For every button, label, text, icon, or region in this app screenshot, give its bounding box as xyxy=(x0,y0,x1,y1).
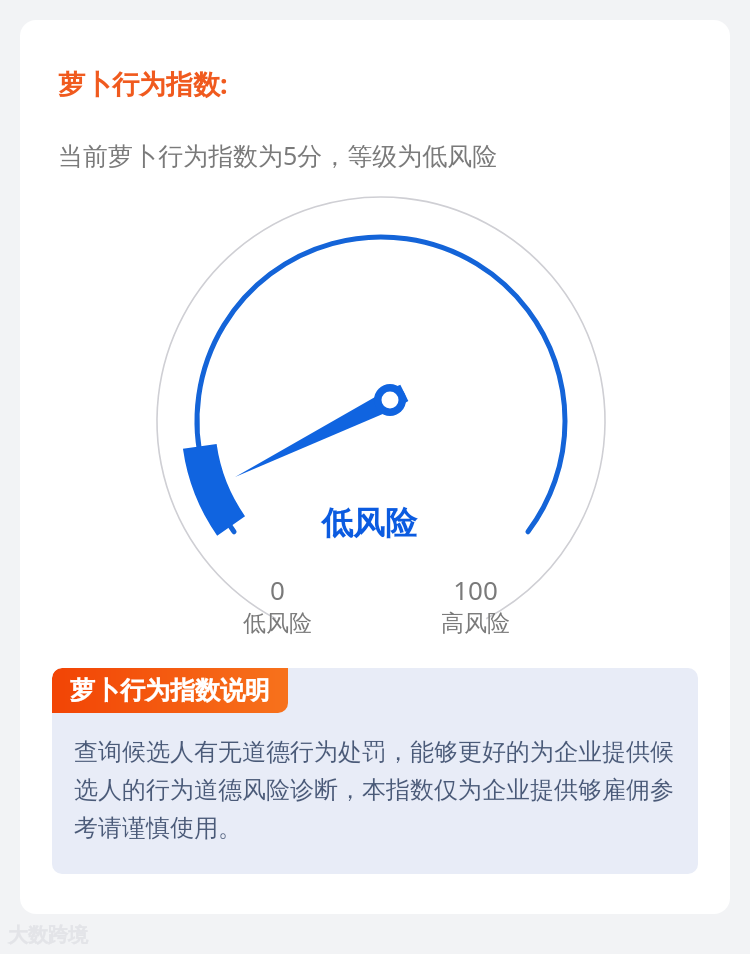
staticText: 萝卜行为指数: xyxy=(58,65,228,102)
staticText: 当前萝卜行为指数为5分，等级为低风险 xyxy=(58,138,498,172)
staticText: 萝卜行为指数说明 xyxy=(70,675,270,706)
staticText: 0 xyxy=(270,572,285,607)
staticText: 低风险 xyxy=(321,503,417,543)
staticText: 100 xyxy=(453,572,498,607)
staticText: 查询候选人有无道德行为处罚，能够更好的为企业提供候选人的行为道德风险诊断，本指数… xyxy=(74,737,676,844)
staticText: 大数跨境 xyxy=(8,923,88,948)
staticText: 高风险 xyxy=(441,609,510,638)
staticText: 低风险 xyxy=(243,609,312,638)
other: 萝卜行为指数仪表盘，低风险 xyxy=(20,200,730,620)
button[interactable]: 萝卜行为指数说明 xyxy=(52,668,698,874)
